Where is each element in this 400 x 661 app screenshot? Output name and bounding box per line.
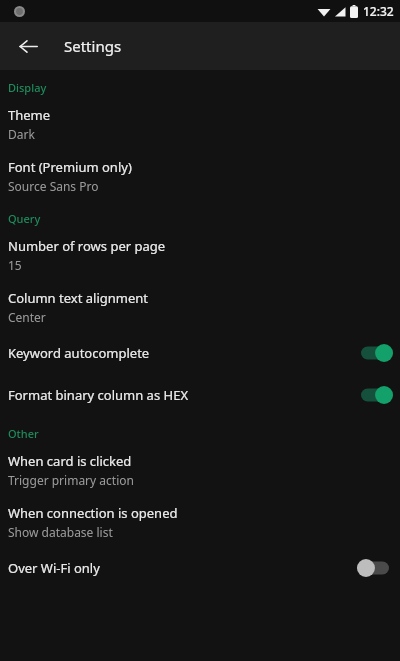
staticText: When card is clicked	[8, 452, 132, 470]
staticText: Show database list	[8, 524, 113, 540]
staticText: Keyword autocomplete	[8, 344, 356, 362]
button[interactable]: Back	[8, 26, 48, 66]
staticText: Center	[8, 309, 46, 325]
staticText: Display	[8, 80, 47, 95]
button[interactable]: Keyword autocomplete	[0, 332, 400, 374]
staticText: 15	[8, 257, 22, 273]
staticText: When connection is opened	[8, 504, 178, 522]
button[interactable]: When connection is opened	[0, 495, 400, 547]
staticText: Column text alignment	[8, 289, 148, 307]
staticText: Over Wi-Fi only	[8, 559, 356, 577]
button[interactable]: Number of rows per page	[0, 228, 400, 280]
staticText: Dark	[8, 126, 35, 142]
button[interactable]: Format binary column as HEX	[0, 374, 400, 416]
button[interactable]: Column text alignment	[0, 280, 400, 332]
staticText: Number of rows per page	[8, 237, 166, 255]
button[interactable]: Font (Premium only)	[0, 149, 400, 201]
button[interactable]: Over Wi-Fi only	[0, 547, 400, 589]
staticText: Theme	[8, 106, 51, 124]
staticText: Settings	[64, 36, 122, 56]
staticText: Query	[8, 211, 41, 226]
button[interactable]: When card is clicked	[0, 443, 400, 495]
staticText: Other	[8, 426, 39, 441]
staticText: Font (Premium only)	[8, 158, 132, 176]
staticText: Source Sans Pro	[8, 178, 99, 194]
staticText: Trigger primary action	[8, 472, 134, 488]
staticText: Format binary column as HEX	[8, 386, 356, 404]
button[interactable]: Theme	[0, 97, 400, 149]
staticText: 12:32	[363, 3, 394, 19]
